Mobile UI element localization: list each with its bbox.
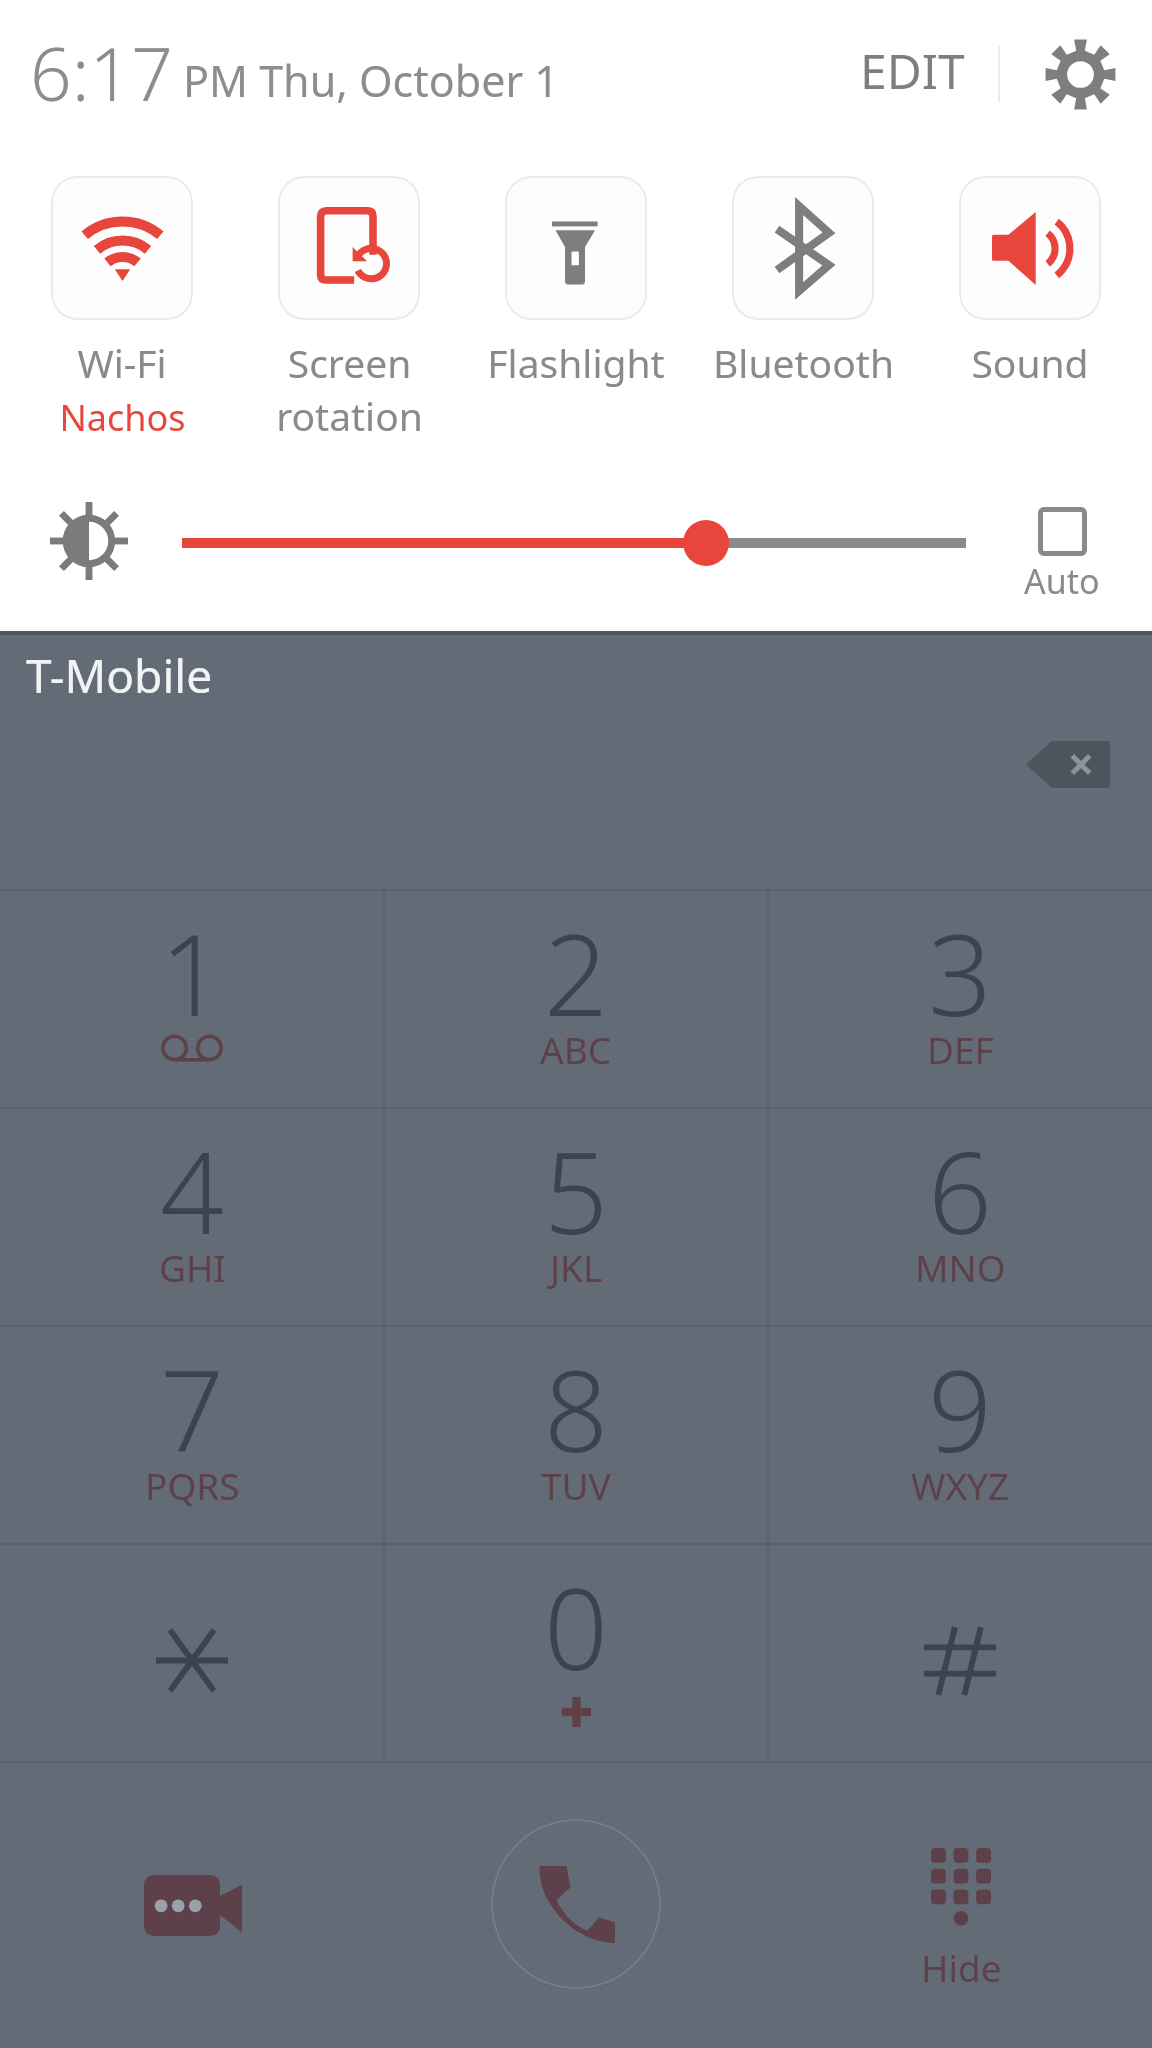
button[interactable]: 0 bbox=[384, 1544, 768, 1762]
button[interactable]: Bluetooth bbox=[688, 176, 918, 389]
staticText: MNO bbox=[915, 1242, 1006, 1292]
button[interactable]: Hide bbox=[901, 1848, 1021, 1992]
staticText: 0 bbox=[544, 1550, 608, 1703]
staticText: PQRS bbox=[145, 1460, 240, 1510]
button[interactable]: Flashlight bbox=[461, 176, 691, 389]
button[interactable]: Backspace bbox=[1004, 717, 1132, 811]
button[interactable]: 7 bbox=[0, 1326, 384, 1544]
staticText: EDIT bbox=[860, 38, 965, 103]
button[interactable]: 6 bbox=[768, 1108, 1152, 1326]
button[interactable]: 8 bbox=[384, 1326, 768, 1544]
staticText: GHI bbox=[159, 1242, 226, 1292]
staticText: JKL bbox=[550, 1242, 603, 1292]
staticText: PM Thu, October 1 bbox=[183, 51, 559, 110]
staticText: 8 bbox=[544, 1332, 608, 1485]
button[interactable] bbox=[768, 1544, 1152, 1762]
staticText: 6:17 bbox=[30, 23, 173, 122]
button[interactable]: 2 bbox=[384, 890, 768, 1108]
button[interactable]: 3 bbox=[768, 890, 1152, 1108]
staticText: 5 bbox=[544, 1114, 608, 1267]
staticText: Flashlight bbox=[487, 336, 665, 389]
staticText: Screen rotation bbox=[276, 336, 423, 443]
button[interactable]: Call bbox=[491, 1819, 661, 1989]
staticText: Wi-Fi bbox=[77, 336, 167, 389]
staticText: Nachos bbox=[59, 393, 186, 442]
staticText: 3 bbox=[928, 896, 992, 1049]
button[interactable]: Sound bbox=[915, 176, 1145, 389]
button[interactable]: EDIT bbox=[841, 20, 983, 120]
staticText: Hide bbox=[921, 1942, 1002, 1992]
button[interactable]: Auto bbox=[1002, 507, 1122, 604]
button[interactable]: Video call bbox=[122, 1845, 264, 1965]
staticText: ABC bbox=[540, 1024, 612, 1074]
staticText: 2 bbox=[544, 896, 608, 1049]
button[interactable]: Brightness slider bbox=[182, 500, 966, 574]
button[interactable]: 9 bbox=[768, 1326, 1152, 1544]
button[interactable]: Wi-Fi bbox=[7, 176, 237, 442]
staticText: Auto bbox=[1024, 558, 1100, 604]
button[interactable]: Brightness bbox=[40, 492, 138, 590]
button[interactable]: Screen rotation bbox=[234, 176, 464, 443]
staticText: WXYZ bbox=[911, 1460, 1010, 1510]
staticText: Sound bbox=[971, 336, 1089, 389]
staticText: 4 bbox=[160, 1114, 224, 1267]
staticText: 1 bbox=[160, 896, 224, 1049]
staticText: DEF bbox=[927, 1024, 994, 1074]
button[interactable]: 1 bbox=[0, 890, 384, 1108]
staticText: T-Mobile bbox=[26, 644, 213, 707]
staticText: 6 bbox=[928, 1114, 992, 1267]
staticText: 7 bbox=[160, 1332, 224, 1485]
button[interactable]: 5 bbox=[384, 1108, 768, 1326]
staticText: 9 bbox=[928, 1332, 992, 1485]
button[interactable] bbox=[0, 1544, 384, 1762]
staticText: Bluetooth bbox=[713, 336, 894, 389]
button[interactable]: 4 bbox=[0, 1108, 384, 1326]
button[interactable]: Settings bbox=[1034, 29, 1126, 119]
staticText: TUV bbox=[541, 1460, 611, 1510]
